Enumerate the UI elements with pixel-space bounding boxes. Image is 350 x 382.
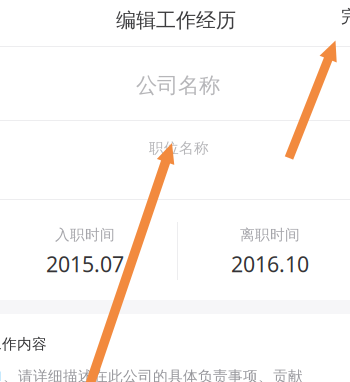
staticText: 完成 (341, 6, 350, 27)
staticText: 2015.07 (46, 250, 124, 278)
button[interactable]: 入职时间 (1, 202, 169, 302)
staticText: 离职时间 (240, 226, 300, 244)
button[interactable]: 职位名称 (0, 121, 350, 199)
staticText: 1、请详细描述在此公司的具体负责事项、贡献 (0, 366, 303, 382)
staticText: 编辑工作经历 (116, 8, 236, 33)
staticText: 职位名称 (149, 139, 209, 157)
staticText: 入职时间 (55, 226, 115, 244)
button[interactable]: 编辑工作经历 (108, 0, 244, 41)
button[interactable]: 完成 (331, 0, 350, 39)
staticText: 公司名称 (136, 72, 220, 99)
staticText: 工作内容 (0, 335, 47, 353)
staticText: 2016.10 (231, 250, 309, 278)
button[interactable]: 离职时间 (186, 202, 350, 302)
button[interactable]: 公司名称 (0, 47, 350, 120)
